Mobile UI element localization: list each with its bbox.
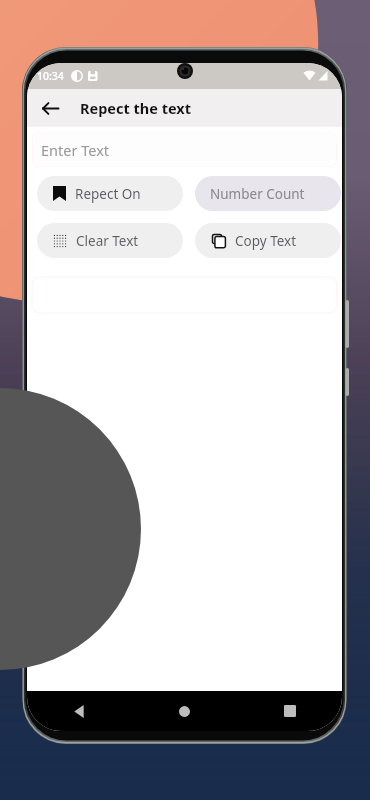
button[interactable]: Repect On xyxy=(37,176,183,211)
button[interactable]: Enter Text xyxy=(32,132,337,167)
staticText: Number Count xyxy=(210,185,305,203)
staticText: Enter Text xyxy=(41,140,110,160)
button[interactable]: Number Count xyxy=(195,176,341,211)
staticText: 10:34 xyxy=(37,69,64,83)
staticText: Repect the text xyxy=(80,98,192,118)
staticText: Repect On xyxy=(75,185,141,203)
button[interactable]: Back xyxy=(27,691,132,731)
staticText: Clear Text xyxy=(76,232,139,250)
button[interactable]: Copy Text xyxy=(195,223,341,258)
button[interactable]: Recent apps xyxy=(237,691,342,731)
button[interactable]: Back xyxy=(35,93,65,123)
button[interactable]: Home xyxy=(132,691,237,731)
button[interactable]: Clear Text xyxy=(37,223,183,258)
staticText: Copy Text xyxy=(235,232,297,250)
